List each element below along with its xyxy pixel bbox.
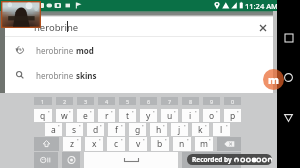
button[interactable]: Video picture in picture	[1, 1, 41, 28]
button[interactable]: t	[119, 109, 136, 122]
staticText: p	[230, 110, 236, 122]
button[interactable]: m	[195, 137, 213, 151]
staticText: o	[209, 110, 215, 122]
button[interactable]: 2	[56, 97, 73, 105]
staticText: s	[72, 124, 77, 136]
button[interactable]: Recents	[281, 30, 296, 45]
staticText: u	[167, 110, 173, 122]
staticText: y	[146, 110, 151, 122]
button[interactable]: Shift	[34, 137, 59, 151]
button[interactable]: 9	[203, 97, 220, 105]
staticText: mod	[76, 45, 94, 56]
staticText: herobrine	[36, 70, 76, 81]
staticText: i	[189, 110, 192, 122]
button[interactable]: 3	[77, 97, 94, 105]
button[interactable]: d	[87, 123, 104, 136]
button[interactable]: y	[140, 109, 157, 122]
button[interactable]: o	[203, 109, 220, 122]
button[interactable]: 6	[140, 97, 157, 105]
button[interactable]: Voice input	[62, 152, 80, 168]
staticText: d	[93, 124, 99, 136]
button[interactable]: z	[63, 137, 81, 151]
staticText: m	[268, 72, 279, 87]
staticText: herobrine	[34, 21, 79, 34]
staticText: a	[51, 124, 56, 136]
staticText: x	[92, 138, 97, 150]
staticText: Recorded by	[192, 155, 232, 164]
staticText: n	[179, 138, 185, 150]
button[interactable]: w	[56, 109, 73, 122]
button[interactable]: Mobizen recorder	[263, 69, 284, 90]
button[interactable]: 0	[224, 97, 241, 105]
button[interactable]: f	[108, 123, 125, 136]
button[interactable]: s	[66, 123, 83, 136]
staticText: w	[61, 110, 68, 122]
staticText: 2	[63, 98, 67, 105]
staticText: m	[200, 138, 208, 150]
button[interactable]: 8	[182, 97, 199, 105]
button[interactable]: n	[173, 137, 191, 151]
staticText: 8	[189, 98, 193, 105]
staticText: l	[220, 124, 223, 136]
button[interactable]: p	[224, 109, 241, 122]
button[interactable]: 1	[34, 97, 52, 105]
button[interactable]: j	[171, 123, 188, 136]
button[interactable]: Back	[281, 110, 296, 125]
staticText: j	[178, 124, 181, 136]
button[interactable]: Backspace	[217, 137, 241, 151]
button[interactable]: Home	[281, 70, 296, 85]
staticText: z	[70, 138, 74, 150]
staticText: r	[105, 110, 109, 122]
button[interactable]: herobrine	[5, 62, 273, 87]
staticText: q	[40, 110, 46, 122]
staticText: k	[198, 124, 203, 136]
staticText: g	[135, 124, 141, 136]
button[interactable]: g	[129, 123, 146, 136]
button[interactable]: 4	[98, 97, 115, 105]
button[interactable]: 7	[161, 97, 178, 105]
button[interactable]: r	[98, 109, 115, 122]
button[interactable]: h	[150, 123, 167, 136]
staticText: skins	[76, 70, 97, 81]
button[interactable]: u	[161, 109, 178, 122]
staticText: 4	[105, 98, 109, 105]
button[interactable]: c	[107, 137, 125, 151]
staticText: h	[156, 124, 162, 136]
button[interactable]: q	[34, 109, 52, 122]
staticText: 11:24 AM	[245, 1, 278, 11]
button[interactable]: a	[45, 123, 62, 136]
button[interactable]: Space	[84, 152, 178, 168]
button[interactable]: x	[85, 137, 103, 151]
staticText: f	[115, 124, 118, 136]
button[interactable]: herobrine	[5, 37, 273, 62]
button[interactable]: k	[192, 123, 209, 136]
staticText: 5	[126, 98, 130, 105]
button[interactable]: e	[77, 109, 94, 122]
staticText: 3	[84, 98, 88, 105]
button[interactable]: v	[129, 137, 147, 151]
button[interactable]: i	[182, 109, 199, 122]
button[interactable]: l	[213, 123, 230, 136]
staticText: b	[157, 138, 163, 150]
button[interactable]: Clear search	[253, 18, 273, 38]
staticText: e	[83, 110, 88, 122]
staticText: 0	[231, 98, 235, 105]
button[interactable]: Symbols	[34, 152, 58, 168]
staticText: t	[126, 110, 130, 122]
staticText: v	[136, 138, 141, 150]
staticText: 7	[168, 98, 172, 105]
staticText: 1	[41, 98, 45, 105]
staticText: 9	[210, 98, 214, 105]
button[interactable]: Enter	[182, 152, 241, 168]
staticText: c	[114, 138, 119, 150]
button[interactable]: b	[151, 137, 169, 151]
staticText: 6	[147, 98, 151, 105]
staticText: herobrine	[36, 45, 76, 56]
button[interactable]: 5	[119, 97, 136, 105]
